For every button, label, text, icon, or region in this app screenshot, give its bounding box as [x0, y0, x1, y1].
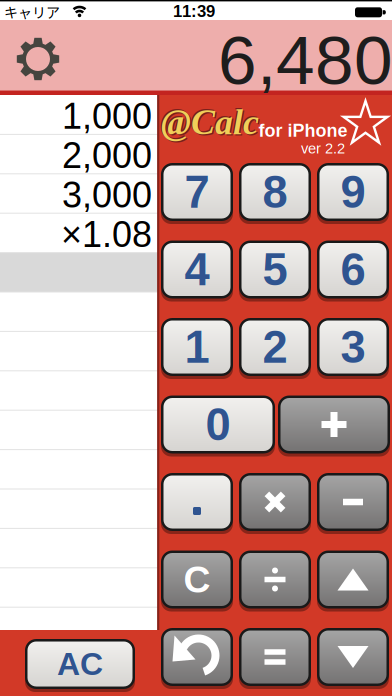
staticText: 1,000	[62, 96, 152, 136]
staticText: @Calc	[161, 102, 259, 142]
staticText: 11:39	[173, 2, 215, 21]
staticText: AC	[57, 646, 103, 682]
staticText: ver 2.2	[301, 140, 345, 156]
staticText: 5	[262, 244, 287, 295]
button[interactable]: 9	[317, 160, 389, 224]
button[interactable]: 6	[317, 237, 389, 301]
staticText: キャリア	[4, 1, 60, 22]
button[interactable]: 1	[161, 315, 233, 379]
button[interactable]: 4	[161, 237, 233, 301]
staticText: 2	[262, 322, 287, 372]
button[interactable]: 3	[317, 315, 389, 379]
button[interactable]: C	[161, 547, 233, 611]
button[interactable]: 5	[239, 237, 311, 301]
staticText: ×1.08	[61, 214, 152, 254]
button[interactable]: 2	[239, 315, 311, 379]
button[interactable]	[317, 625, 389, 689]
staticText: 6,480	[218, 21, 392, 99]
button[interactable]	[239, 547, 311, 611]
staticText: 6	[340, 244, 365, 295]
staticText: 3	[340, 322, 365, 372]
staticText: 3,000	[62, 175, 152, 215]
staticText: for iPhone	[258, 120, 347, 140]
staticText: 1	[184, 322, 209, 372]
button[interactable]: 0	[161, 392, 275, 456]
button[interactable]	[239, 470, 311, 534]
button[interactable]	[317, 470, 389, 534]
staticText: @Calc	[162, 103, 260, 143]
button[interactable]	[161, 625, 233, 689]
button[interactable]: AC	[25, 636, 135, 692]
button[interactable]	[161, 470, 233, 534]
staticText: @Calc	[160, 101, 258, 141]
button[interactable]: 7	[161, 160, 233, 224]
staticText: C	[183, 559, 210, 600]
button[interactable]	[239, 625, 311, 689]
button[interactable]	[317, 547, 389, 611]
button[interactable]: 8	[239, 160, 311, 224]
button[interactable]	[14, 35, 62, 83]
staticText: 8	[262, 167, 287, 217]
staticText: 0	[205, 399, 230, 450]
button[interactable]	[278, 392, 390, 456]
staticText: 7	[184, 167, 209, 217]
staticText: 4	[184, 244, 209, 295]
staticText: 2,000	[62, 135, 152, 176]
staticText: 9	[340, 167, 365, 217]
